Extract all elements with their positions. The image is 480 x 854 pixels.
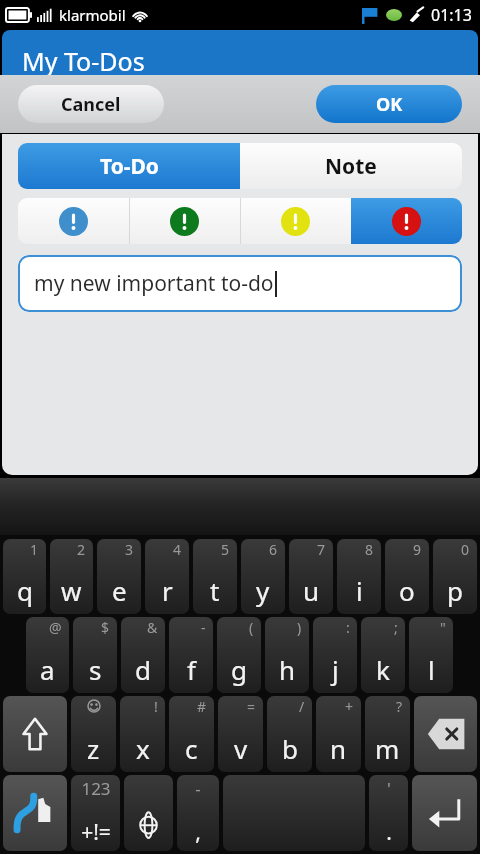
staticText: n	[330, 731, 347, 766]
button[interactable]: =	[218, 696, 263, 772]
staticText: @	[49, 618, 62, 637]
staticText: $	[101, 618, 110, 637]
staticText: ?	[396, 697, 403, 716]
staticText: w	[61, 573, 82, 608]
staticText: g	[231, 652, 247, 687]
button[interactable]: Note	[240, 143, 462, 189]
button[interactable]: Priority 3	[240, 198, 351, 244]
button[interactable]: $	[73, 617, 117, 693]
staticText: h	[279, 652, 296, 687]
button[interactable]: Shift	[3, 696, 67, 772]
button[interactable]: Cancel	[18, 85, 164, 123]
button[interactable]: 5	[193, 539, 237, 614]
staticText: My To-Dos	[22, 44, 145, 78]
button[interactable]: Priority 2	[129, 198, 240, 244]
staticText: d	[135, 652, 151, 687]
staticText: (	[249, 618, 254, 637]
button[interactable]: z	[71, 696, 116, 772]
staticText: "	[440, 618, 446, 637]
button[interactable]: @	[26, 617, 69, 693]
staticText: m	[375, 731, 400, 766]
staticText: .	[386, 818, 392, 847]
button[interactable]: Priority 4	[351, 198, 462, 244]
staticText: 3	[125, 540, 134, 559]
staticText: +!=	[81, 818, 111, 847]
staticText: r	[162, 573, 173, 608]
staticText: /	[299, 697, 305, 716]
staticText: 0	[461, 540, 470, 559]
button[interactable]: 9	[385, 539, 429, 614]
button[interactable]: ?	[365, 696, 410, 772]
staticText: u	[303, 573, 320, 608]
staticText: f	[187, 652, 196, 687]
staticText: ,	[195, 818, 201, 847]
button[interactable]: Priority 1	[18, 198, 129, 244]
button[interactable]: 0	[433, 539, 477, 614]
staticText: Note	[325, 152, 377, 181]
staticText: :	[346, 618, 350, 637]
button[interactable]: :	[313, 617, 357, 693]
button[interactable]: Gesture input	[3, 775, 67, 851]
button[interactable]: 3	[97, 539, 141, 614]
button[interactable]: ;	[361, 617, 405, 693]
staticText: 5	[221, 540, 230, 559]
staticText: s	[89, 652, 102, 687]
staticText: l	[428, 652, 435, 687]
button[interactable]: '	[369, 775, 408, 851]
button[interactable]: "	[409, 617, 453, 693]
button[interactable]: 6	[241, 539, 285, 614]
button[interactable]: (	[217, 617, 261, 693]
staticText: =	[247, 697, 256, 716]
button[interactable]: Backspace	[414, 696, 477, 772]
staticText: q	[17, 573, 33, 608]
button[interactable]: my new important to-do	[18, 255, 462, 312]
staticText: 6	[269, 540, 278, 559]
button[interactable]: )	[265, 617, 309, 693]
staticText: 2	[77, 540, 86, 559]
staticText: j	[332, 652, 339, 687]
staticText: OK	[376, 92, 403, 117]
staticText: k	[376, 652, 390, 687]
button[interactable]: 4	[145, 539, 189, 614]
staticText: 1	[30, 540, 39, 559]
button[interactable]: Space	[223, 775, 365, 851]
staticText: o	[399, 573, 415, 608]
button[interactable]: -	[169, 617, 213, 693]
staticText: +	[345, 697, 354, 716]
button[interactable]: /	[267, 696, 312, 772]
staticText: x	[136, 731, 150, 766]
staticText: !	[154, 697, 158, 716]
button[interactable]: #	[169, 696, 214, 772]
staticText: 9	[413, 540, 422, 559]
button[interactable]: 123	[71, 775, 120, 851]
button[interactable]: !	[120, 696, 165, 772]
button[interactable]: Language EN	[124, 775, 173, 851]
staticText: t	[210, 573, 220, 608]
button[interactable]: -	[177, 775, 219, 851]
button[interactable]: 7	[289, 539, 333, 614]
staticText: -	[195, 777, 201, 800]
staticText: To-Do	[100, 152, 159, 181]
button[interactable]: 2	[50, 539, 93, 614]
staticText: ;	[394, 618, 398, 637]
staticText: #	[197, 697, 207, 716]
staticText: 4	[173, 540, 182, 559]
staticText: -	[201, 618, 206, 637]
button[interactable]: To-Do	[18, 143, 240, 189]
button[interactable]: Enter	[412, 775, 477, 851]
staticText: y	[256, 573, 270, 608]
staticText: '	[387, 777, 391, 800]
button[interactable]: &	[121, 617, 165, 693]
staticText: )	[297, 618, 302, 637]
staticText: e	[112, 573, 127, 608]
staticText: a	[40, 652, 55, 687]
staticText: 7	[317, 540, 326, 559]
staticText: b	[282, 731, 298, 766]
staticText: 01:13	[431, 4, 472, 26]
button[interactable]: 1	[3, 539, 46, 614]
button[interactable]: +	[316, 696, 361, 772]
staticText: Cancel	[61, 92, 121, 117]
button[interactable]: OK	[316, 85, 462, 123]
button[interactable]: 8	[337, 539, 381, 614]
staticText: klarmobil	[59, 5, 126, 25]
